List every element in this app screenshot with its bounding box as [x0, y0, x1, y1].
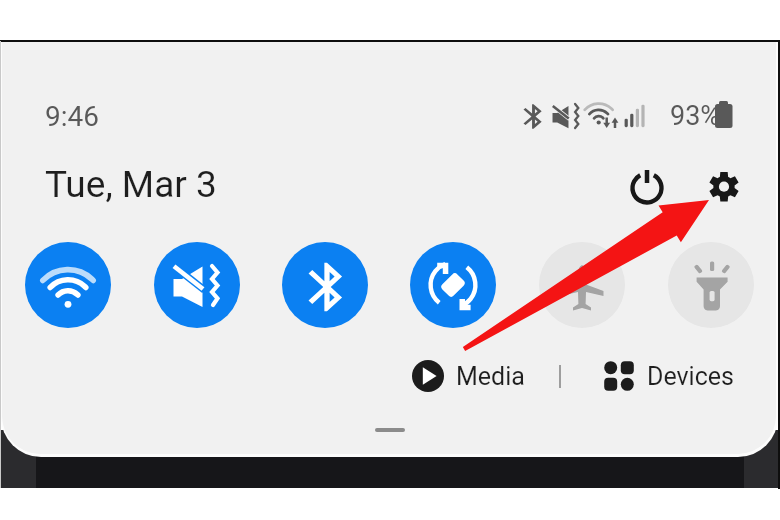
staticText: Media [456, 362, 525, 391]
staticText: Tue, Mar 3 [45, 163, 217, 206]
button[interactable]: Wi-Fi [25, 242, 111, 328]
button[interactable]: Auto rotate [410, 242, 496, 328]
button[interactable]: Power off [625, 166, 669, 210]
staticText: Devices [647, 362, 734, 391]
button[interactable]: Settings [702, 164, 746, 208]
button[interactable]: Flashlight [668, 242, 754, 328]
staticText: 9:46 [45, 100, 99, 133]
button[interactable]: Flight mode [539, 242, 625, 328]
staticText: 93% [670, 100, 721, 132]
button[interactable]: Devices [602, 358, 734, 394]
button[interactable]: Bluetooth [282, 242, 368, 328]
button[interactable]: Sound [154, 242, 240, 328]
button[interactable]: Media [411, 358, 525, 394]
